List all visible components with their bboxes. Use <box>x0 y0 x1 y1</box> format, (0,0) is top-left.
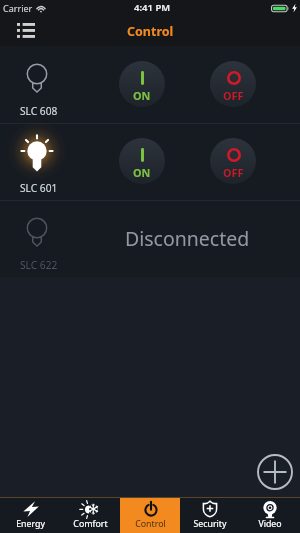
staticText: Energy <box>16 518 45 530</box>
button[interactable]: Energy <box>0 498 60 533</box>
staticText: SLC 601 <box>20 181 58 195</box>
staticText: SLC 622 <box>20 258 58 272</box>
button[interactable]: Turn on <box>119 61 165 107</box>
staticText: Video <box>258 518 282 530</box>
staticText: Security <box>193 518 227 530</box>
staticText: ON <box>133 165 151 180</box>
button[interactable]: Turn on <box>119 138 165 184</box>
button[interactable]: Add <box>253 450 297 494</box>
staticText: Carrier <box>3 2 33 14</box>
button[interactable]: Video <box>240 498 300 533</box>
staticText: ON <box>133 88 151 103</box>
staticText: OFF <box>223 88 244 103</box>
staticText: Control <box>127 23 174 40</box>
button[interactable]: Security <box>180 498 240 533</box>
button[interactable]: Turn off <box>210 138 256 184</box>
staticText: Control <box>135 518 166 530</box>
staticText: 4:41 PM <box>134 1 171 14</box>
button[interactable]: SLC 622 <box>0 200 300 277</box>
button[interactable]: Turn off <box>210 61 256 107</box>
button[interactable]: SLC 608 <box>0 46 300 123</box>
staticText: Comfort <box>73 518 108 530</box>
button[interactable]: Menu <box>6 16 46 46</box>
staticText: OFF <box>223 165 244 180</box>
button[interactable]: SLC 601 <box>0 123 300 200</box>
staticText: Disconnected <box>125 225 250 252</box>
button[interactable]: Control <box>120 498 180 533</box>
staticText: SLC 608 <box>20 104 58 118</box>
button[interactable]: Comfort <box>60 498 120 533</box>
